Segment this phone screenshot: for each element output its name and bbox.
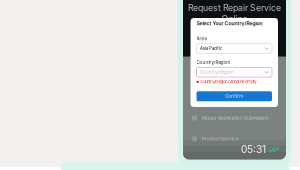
- button[interactable]: Confirm: [196, 91, 272, 101]
- button[interactable]: Product Service: [183, 128, 286, 149]
- button[interactable]: Repair Application Submission: [183, 107, 286, 128]
- staticText: 05:31: [241, 143, 266, 155]
- staticText: Asia Pacific: [200, 46, 222, 51]
- staticText: Repair Application Submission: [202, 115, 269, 121]
- staticText: Area: [196, 36, 206, 41]
- staticText: Product Service: [202, 136, 239, 142]
- staticText: Confirm: [225, 94, 243, 99]
- button[interactable]: Country/Region: [196, 67, 272, 77]
- button[interactable]: Asia Pacific: [196, 44, 272, 53]
- staticText: Select Your Country/Region: [196, 20, 262, 26]
- staticText: Country/Region: [200, 70, 234, 75]
- staticText: Online: [221, 14, 247, 24]
- staticText: Country/Region cannot be empty: [200, 79, 256, 84]
- staticText: Request Repair Service: [188, 3, 281, 13]
- staticText: Country/Region: [196, 60, 230, 65]
